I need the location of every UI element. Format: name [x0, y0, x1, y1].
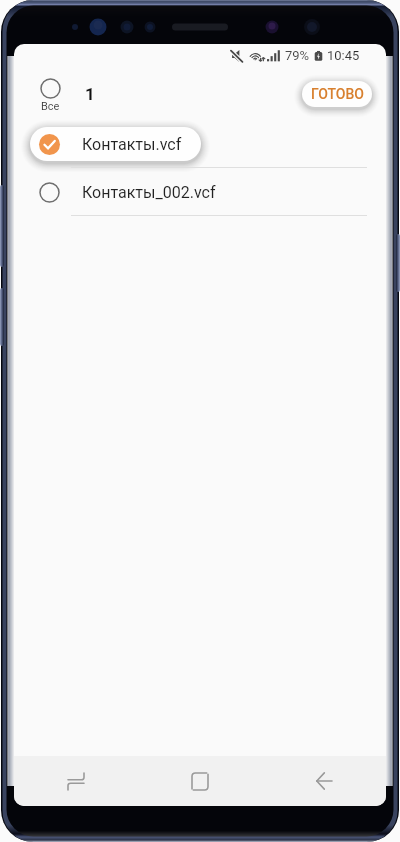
staticText: Все — [41, 100, 60, 113]
button[interactable]: Back — [262, 756, 386, 806]
staticText: 79% — [285, 48, 310, 63]
button[interactable]: ГОТОВО — [302, 81, 372, 107]
staticText: 1 — [85, 84, 95, 104]
button[interactable]: Home — [138, 756, 262, 806]
staticText: 10:45 — [327, 48, 360, 63]
staticText: Контакты_002.vcf — [82, 183, 216, 202]
button[interactable]: Контакты_002.vcf — [14, 168, 386, 217]
button[interactable]: Recents — [14, 756, 138, 806]
button[interactable]: Все — [31, 78, 70, 113]
staticText: Контакты.vcf — [82, 135, 182, 154]
button[interactable]: Контакты.vcf — [14, 120, 386, 169]
staticText: ГОТОВО — [311, 86, 364, 102]
